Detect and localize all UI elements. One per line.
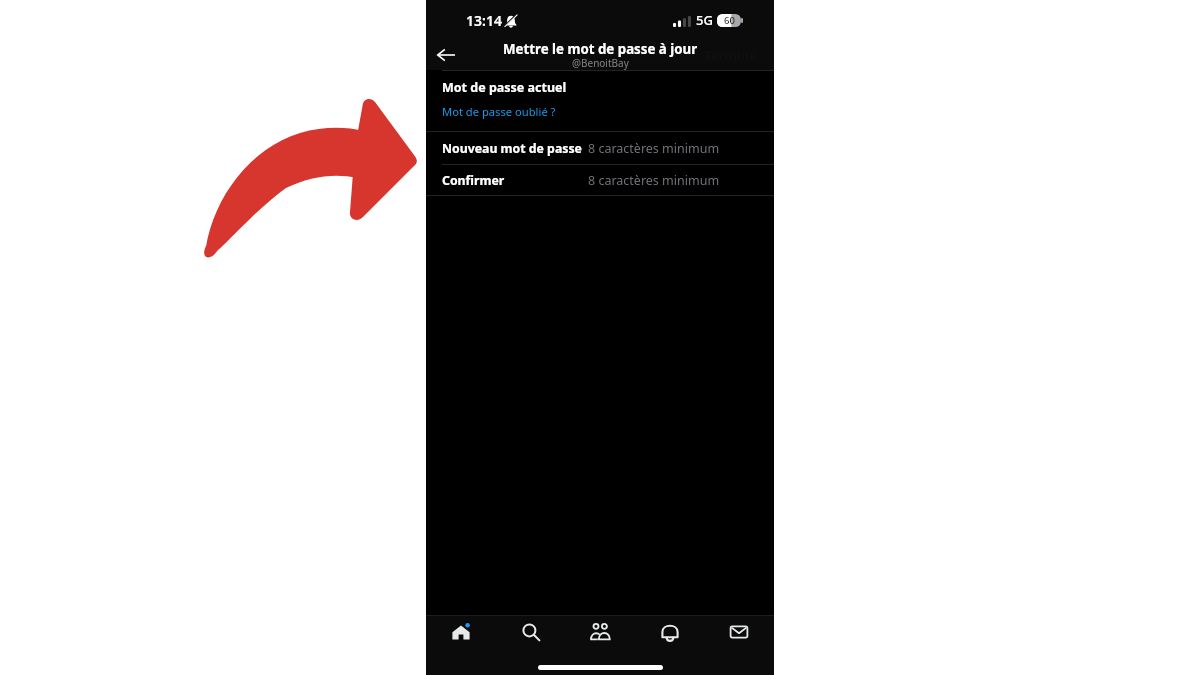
button[interactable]: Communities xyxy=(577,615,623,649)
staticText: 8 caractères minimum xyxy=(588,140,720,157)
staticText: Mettre le mot de passe à jour xyxy=(503,40,698,58)
staticText: Confirmer xyxy=(442,172,505,189)
button[interactable]: Notifications xyxy=(647,615,693,649)
staticText: Mot de passe oublié ? xyxy=(442,104,556,119)
staticText: 8 caractères minimum xyxy=(588,172,720,189)
button[interactable]: Mot de passe actuel xyxy=(426,71,774,101)
staticText: Nouveau mot de passe xyxy=(442,140,582,157)
staticText: @BenoitBay xyxy=(572,56,629,70)
staticText: Mot de passe actuel xyxy=(442,79,567,96)
button[interactable]: Messages xyxy=(716,615,762,649)
button[interactable]: Home xyxy=(438,615,484,649)
staticText: 5G xyxy=(696,11,713,29)
button[interactable]: Confirmer xyxy=(426,165,774,195)
button[interactable]: Mot de passe oublié ? xyxy=(426,101,774,131)
staticText: 60 xyxy=(724,14,735,27)
button[interactable]: Nouveau mot de passe xyxy=(426,132,774,164)
button[interactable]: Search xyxy=(508,615,554,649)
button[interactable]: Back xyxy=(430,39,462,71)
staticText: 13:14 xyxy=(466,11,502,30)
